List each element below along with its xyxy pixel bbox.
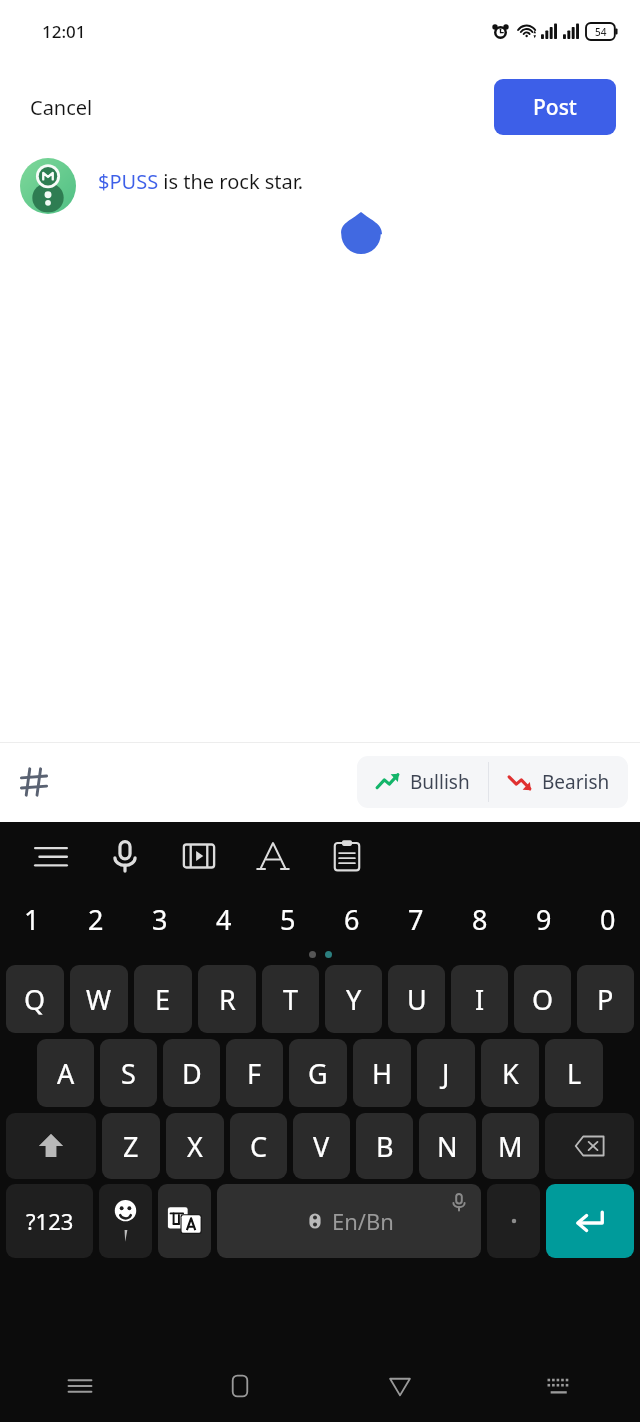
staticText: 1 bbox=[24, 901, 40, 938]
button[interactable]: Hashtag bbox=[8, 756, 60, 808]
button[interactable]: Emoji bbox=[99, 1184, 152, 1258]
button[interactable]: Home bbox=[160, 1350, 320, 1422]
staticText: J bbox=[442, 1055, 450, 1092]
button[interactable]: P bbox=[577, 965, 634, 1033]
button[interactable]: GIF bbox=[162, 822, 236, 890]
button[interactable]: 0 bbox=[576, 890, 640, 948]
staticText: M bbox=[498, 1128, 523, 1165]
button[interactable]: Text style bbox=[236, 822, 310, 890]
staticText: 9 bbox=[536, 901, 552, 938]
staticText: S bbox=[121, 1055, 136, 1092]
button[interactable]: Menu bbox=[14, 822, 88, 890]
button[interactable]: 3 bbox=[128, 890, 192, 948]
button[interactable]: Y bbox=[325, 965, 382, 1033]
button[interactable]: H bbox=[353, 1039, 411, 1107]
button[interactable]: 5 bbox=[256, 890, 320, 948]
button[interactable]: Cancel bbox=[16, 86, 107, 129]
button[interactable]: Z bbox=[102, 1113, 160, 1179]
staticText: I bbox=[475, 981, 485, 1018]
button[interactable]: C bbox=[230, 1113, 287, 1179]
button[interactable]: V bbox=[293, 1113, 350, 1179]
staticText: Z bbox=[123, 1128, 139, 1165]
staticText: T bbox=[283, 981, 299, 1018]
button[interactable]: 9 bbox=[512, 890, 576, 948]
button[interactable]: L bbox=[545, 1039, 603, 1107]
staticText: H bbox=[372, 1055, 393, 1092]
staticText: X bbox=[187, 1128, 203, 1165]
button[interactable]: Post bbox=[494, 79, 616, 135]
staticText: U bbox=[407, 981, 427, 1018]
staticText: Bullish bbox=[410, 769, 470, 795]
button[interactable]: T bbox=[262, 965, 319, 1033]
staticText: 12:01 bbox=[42, 20, 86, 43]
staticText: V bbox=[313, 1128, 330, 1165]
staticText: C bbox=[250, 1128, 268, 1165]
staticText: 8 bbox=[472, 901, 488, 938]
button[interactable]: N bbox=[419, 1113, 476, 1179]
button[interactable]: Back bbox=[320, 1350, 480, 1422]
staticText: 7 bbox=[408, 901, 424, 938]
button[interactable]: E bbox=[134, 965, 192, 1033]
staticText: 3 bbox=[152, 901, 168, 938]
staticText: G bbox=[308, 1055, 328, 1092]
button[interactable]: Voice input bbox=[88, 822, 162, 890]
staticText: 6 bbox=[344, 901, 360, 938]
button[interactable]: R bbox=[198, 965, 256, 1033]
button[interactable]: En/Bn bbox=[217, 1184, 481, 1258]
button[interactable]: 8 bbox=[448, 890, 512, 948]
button[interactable]: Backspace bbox=[545, 1113, 634, 1179]
button[interactable]: Hide keyboard bbox=[480, 1350, 640, 1422]
button[interactable]: ?123 bbox=[6, 1184, 93, 1258]
staticText: W bbox=[86, 981, 112, 1018]
staticText: D bbox=[182, 1055, 202, 1092]
staticText: N bbox=[437, 1128, 458, 1165]
button[interactable]: Switch language bbox=[158, 1184, 211, 1258]
button[interactable]: Recents bbox=[0, 1350, 160, 1422]
button[interactable]: Profile avatar bbox=[20, 158, 76, 214]
staticText: En/Bn bbox=[332, 1206, 394, 1236]
staticText: 4 bbox=[216, 901, 232, 938]
staticText: Q bbox=[24, 981, 46, 1018]
staticText: B bbox=[376, 1128, 394, 1165]
button[interactable]: 4 bbox=[192, 890, 256, 948]
staticText: $PUSS is the rock star. bbox=[98, 168, 304, 195]
button[interactable]: 6 bbox=[320, 890, 384, 948]
button[interactable]: Bullish bbox=[357, 756, 488, 808]
staticText: F bbox=[247, 1055, 262, 1092]
button[interactable]: W bbox=[70, 965, 128, 1033]
button[interactable]: A bbox=[37, 1039, 94, 1107]
button[interactable]: Shift bbox=[6, 1113, 96, 1179]
button[interactable]: D bbox=[163, 1039, 220, 1107]
staticText: Bearish bbox=[542, 769, 610, 795]
button[interactable] bbox=[487, 1184, 540, 1258]
button[interactable]: 7 bbox=[384, 890, 448, 948]
button[interactable]: M bbox=[482, 1113, 539, 1179]
staticText: R bbox=[219, 981, 236, 1018]
button[interactable]: 1 bbox=[0, 890, 64, 948]
staticText: P bbox=[597, 981, 614, 1018]
button[interactable]: Enter bbox=[546, 1184, 634, 1258]
button[interactable]: J bbox=[417, 1039, 475, 1107]
button[interactable]: B bbox=[356, 1113, 413, 1179]
button[interactable]: S bbox=[100, 1039, 157, 1107]
staticText: K bbox=[502, 1055, 519, 1092]
button[interactable]: O bbox=[514, 965, 571, 1033]
staticText: A bbox=[57, 1055, 75, 1092]
button[interactable]: F bbox=[226, 1039, 283, 1107]
button[interactable]: Q bbox=[6, 965, 64, 1033]
staticText: ?123 bbox=[26, 1206, 74, 1236]
button[interactable]: Bearish bbox=[489, 756, 628, 808]
button[interactable]: 2 bbox=[64, 890, 128, 948]
staticText: 54 bbox=[595, 25, 607, 39]
staticText: Post bbox=[533, 93, 577, 122]
button[interactable]: K bbox=[481, 1039, 539, 1107]
staticText: Y bbox=[346, 981, 362, 1018]
button[interactable]: I bbox=[451, 965, 508, 1033]
staticText: E bbox=[155, 981, 171, 1018]
button[interactable]: G bbox=[289, 1039, 347, 1107]
staticText: 0 bbox=[600, 901, 616, 938]
staticText: L bbox=[567, 1055, 582, 1092]
button[interactable]: Clipboard bbox=[310, 822, 384, 890]
button[interactable]: X bbox=[166, 1113, 224, 1179]
button[interactable]: U bbox=[388, 965, 445, 1033]
